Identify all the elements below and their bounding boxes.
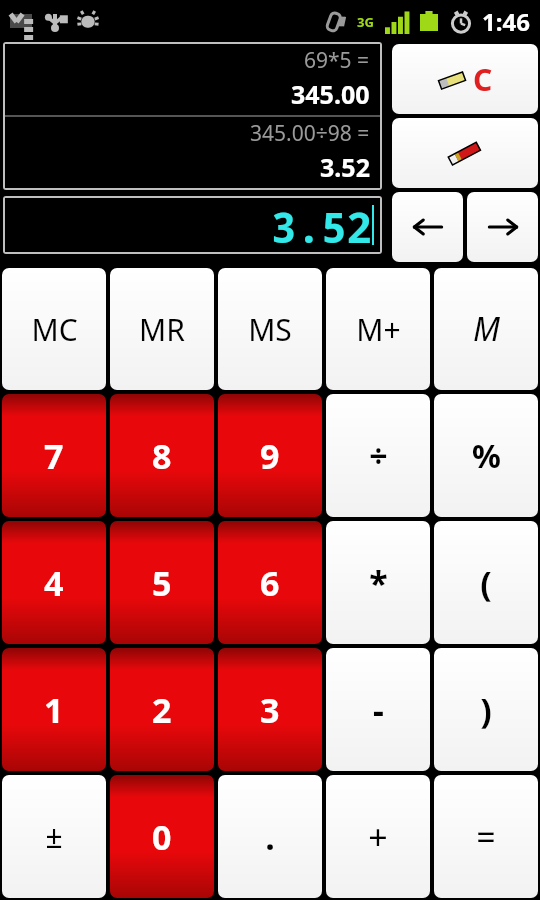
staticText: ( (480, 560, 492, 606)
staticText: 3.52 (271, 198, 372, 252)
button[interactable]: M+ (326, 268, 430, 390)
staticText: 2 (152, 687, 172, 733)
button[interactable]: MC (2, 268, 106, 390)
staticText: M+ (356, 309, 401, 350)
staticText: M (473, 307, 500, 351)
button[interactable]: 9 (218, 394, 322, 517)
button[interactable]: Clear all (392, 44, 538, 114)
button[interactable]: % (434, 394, 538, 517)
staticText: MC (31, 309, 78, 350)
button[interactable]: MR (110, 268, 214, 390)
button[interactable]: 3 (218, 648, 322, 771)
button[interactable]: 4 (2, 521, 106, 644)
staticText: 1:46 (482, 5, 530, 38)
staticText: 3G (357, 13, 374, 31)
staticText: * (369, 560, 388, 606)
button[interactable]: Move cursor left (392, 192, 463, 262)
staticText: ÷ (369, 434, 388, 478)
staticText: 0 (152, 814, 172, 860)
button[interactable]: * (326, 521, 430, 644)
button[interactable]: ( (434, 521, 538, 644)
button[interactable]: 7 (2, 394, 106, 517)
staticText: - (373, 687, 384, 733)
button[interactable]: MS (218, 268, 322, 390)
staticText: + (368, 814, 388, 860)
button[interactable]: Move cursor right (467, 192, 538, 262)
button[interactable]: 5 (110, 521, 214, 644)
staticText: ± (45, 816, 63, 857)
staticText: 5 (152, 560, 172, 606)
button[interactable]: M (434, 268, 538, 390)
staticText: 7 (44, 433, 64, 479)
staticText: ) (480, 687, 492, 733)
staticText: 8 (152, 433, 172, 479)
button[interactable]: 1 (2, 648, 106, 771)
button[interactable]: 8 (110, 394, 214, 517)
button[interactable]: 2 (110, 648, 214, 771)
button[interactable]: Backspace (392, 118, 538, 188)
staticText: 4 (44, 560, 64, 606)
staticText: 69*5 = (304, 46, 370, 75)
button[interactable]: 0 (110, 775, 214, 898)
button[interactable]: + (326, 775, 430, 898)
staticText: = (476, 814, 496, 860)
staticText: 1 (44, 687, 64, 733)
button[interactable]: ± (2, 775, 106, 898)
staticText: MR (139, 309, 185, 350)
button[interactable]: 6 (218, 521, 322, 644)
staticText: 3 (260, 687, 280, 733)
staticText: C (473, 59, 493, 100)
button[interactable]: . (218, 775, 322, 898)
staticText: . (265, 814, 275, 860)
button[interactable]: = (434, 775, 538, 898)
staticText: 345.00 (291, 77, 370, 111)
staticText: 6 (260, 560, 280, 606)
button[interactable]: - (326, 648, 430, 771)
staticText: 3.52 (320, 150, 370, 184)
staticText: MS (248, 309, 292, 350)
button[interactable]: ) (434, 648, 538, 771)
staticText: 9 (260, 433, 280, 479)
staticText: 345.00÷98 = (250, 119, 370, 148)
staticText: % (472, 434, 501, 478)
button[interactable]: ÷ (326, 394, 430, 517)
